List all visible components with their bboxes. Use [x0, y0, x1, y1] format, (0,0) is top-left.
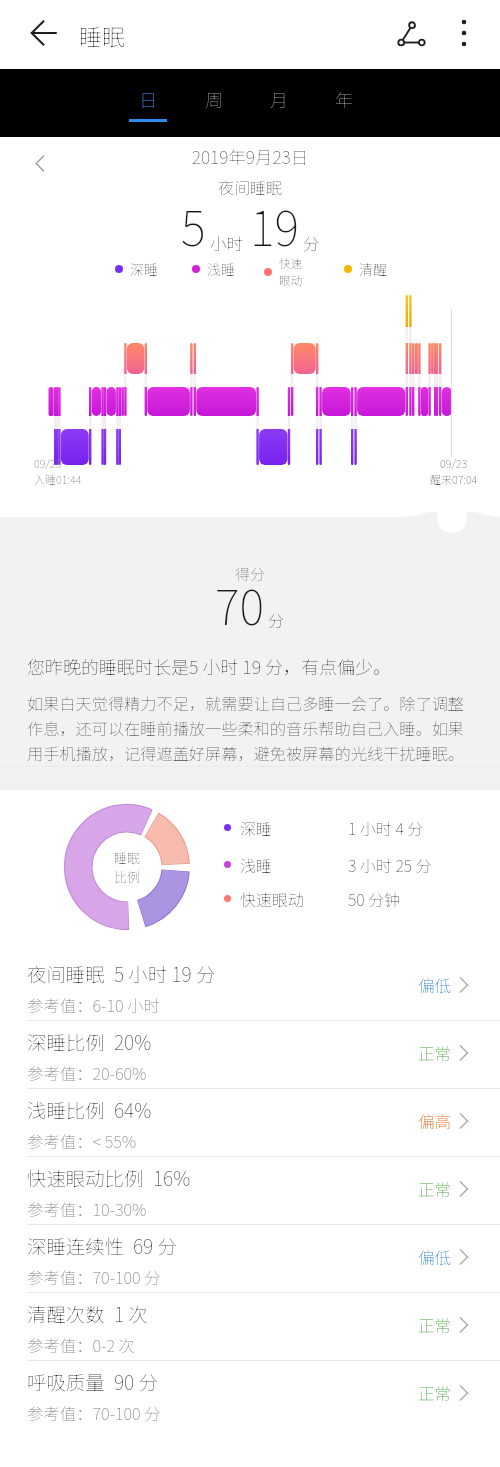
staticText: 09/23	[440, 455, 468, 471]
button[interactable]: 深睡比例	[0, 1021, 500, 1089]
staticText: 清醒次数	[27, 1299, 105, 1327]
staticText: 正常	[418, 1177, 451, 1201]
button[interactable]: 年	[320, 86, 368, 122]
staticText: 夜间睡眠	[27, 959, 105, 987]
staticText: 得分	[0, 563, 500, 585]
staticText: 64%	[114, 1095, 152, 1123]
staticText: 参考值：0-2 次	[27, 1333, 135, 1357]
staticText: 分	[303, 231, 320, 255]
staticText: 睡眠	[114, 848, 141, 867]
staticText: 2019年9月23日	[0, 144, 500, 169]
staticText: 偏低	[418, 1245, 451, 1269]
button[interactable]: 夜间睡眠	[0, 953, 500, 1021]
staticText: 入睡01:44	[34, 471, 82, 487]
button[interactable]: Previous day	[20, 143, 60, 183]
staticText: 09/23	[34, 455, 62, 471]
button[interactable]: Share	[386, 9, 436, 59]
staticText: 醒来07:04	[430, 471, 478, 487]
staticText: 正常	[418, 1381, 451, 1405]
button[interactable]: 快速眼动比例	[0, 1157, 500, 1225]
staticText: 眼动	[279, 272, 302, 289]
staticText: 50 分钟	[348, 887, 401, 910]
staticText: 深睡	[130, 259, 158, 279]
staticText: 年	[335, 86, 353, 112]
staticText: 69 分	[133, 1231, 177, 1259]
staticText: 19	[250, 191, 299, 259]
staticText: 参考值：10-30%	[27, 1197, 147, 1221]
staticText: 90 分	[114, 1367, 158, 1395]
staticText: 深睡	[240, 816, 273, 839]
staticText: 偏高	[418, 1109, 451, 1133]
button[interactable]: 清醒次数	[0, 1293, 500, 1361]
staticText: 16%	[153, 1163, 191, 1191]
staticText: 快速眼动	[240, 887, 305, 910]
staticText: 快速眼动比例	[27, 1163, 144, 1191]
button[interactable]: 月	[255, 86, 303, 122]
staticText: 20%	[114, 1027, 152, 1055]
button[interactable]: 深睡连续性	[0, 1225, 500, 1293]
button[interactable]: 浅睡比例	[0, 1089, 500, 1157]
staticText: 参考值：< 55%	[27, 1129, 137, 1153]
staticText: 浅睡	[240, 853, 273, 876]
staticText: 正常	[418, 1313, 451, 1337]
staticText: 正常	[418, 1041, 451, 1065]
staticText: 5	[181, 191, 206, 259]
staticText: 5 小时 19 分	[114, 959, 216, 987]
staticText: 月	[270, 86, 288, 112]
staticText: 您昨晚的睡眠时长是5 小时 19 分，有点偏少。	[27, 653, 486, 679]
staticText: 睡眠	[79, 19, 125, 52]
staticText: 比例	[114, 867, 141, 886]
staticText: 偏低	[418, 973, 451, 997]
staticText: 参考值：70-100 分	[27, 1265, 161, 1289]
staticText: 浅睡比例	[27, 1095, 105, 1123]
staticText: 如果白天觉得精力不足，就需要让自己多睡一会了。除了调整 作息，还可以在睡前播放一…	[27, 691, 486, 765]
staticText: 1 次	[114, 1299, 148, 1327]
staticText: 周	[205, 86, 223, 112]
staticText: 3 小时 25 分	[348, 853, 432, 876]
staticText: 分	[268, 608, 285, 631]
staticText: 深睡比例	[27, 1027, 105, 1055]
button[interactable]: More options	[441, 9, 486, 59]
button[interactable]: 周	[190, 86, 238, 122]
staticText: 浅睡	[207, 259, 235, 279]
staticText: 参考值：20-60%	[27, 1061, 147, 1085]
staticText: 快速	[279, 255, 302, 272]
staticText: 深睡连续性	[27, 1231, 124, 1259]
button[interactable]: 日	[124, 86, 172, 122]
staticText: 参考值：70-100 分	[27, 1401, 161, 1425]
button[interactable]: Back	[10, 9, 62, 57]
staticText: 1 小时 4 分	[348, 816, 424, 839]
staticText: 日	[139, 86, 157, 112]
staticText: 呼吸质量	[27, 1367, 105, 1395]
staticText: 小时	[210, 231, 243, 255]
staticText: 清醒	[359, 259, 387, 279]
staticText: 夜间睡眠	[0, 175, 500, 198]
staticText: 70	[215, 570, 264, 638]
button[interactable]: 呼吸质量	[0, 1361, 500, 1429]
staticText: 参考值：6-10 小时	[27, 993, 160, 1017]
